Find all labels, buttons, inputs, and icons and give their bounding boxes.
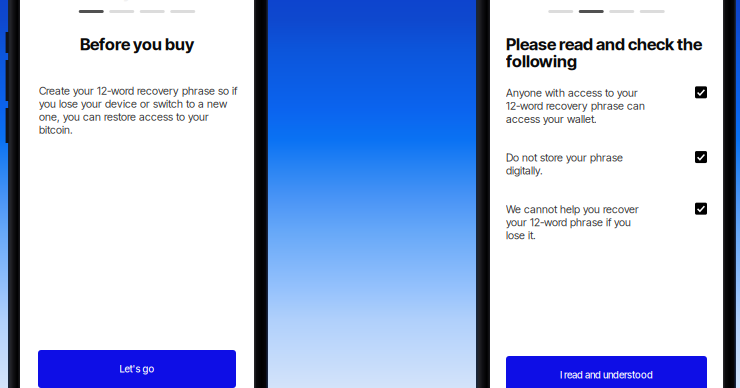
staticText: Do not store your phrase digitally. <box>506 151 623 177</box>
button[interactable]: Let's go <box>38 350 236 388</box>
staticText: Anyone with access to your 12-word recov… <box>506 86 645 125</box>
staticText: Create your 12-word recovery phrase so i… <box>39 84 237 136</box>
staticText: We cannot help you recover your 12-word … <box>506 203 639 242</box>
staticText: I read and understood <box>560 369 653 381</box>
button[interactable]: Anyone with access to your 12-word recov… <box>506 86 707 125</box>
staticText: Let's go <box>119 363 154 375</box>
button[interactable]: I read and understood <box>506 356 707 388</box>
staticText: Please read and check the following <box>506 34 702 71</box>
button[interactable]: Do not store your phrase digitally. <box>506 151 707 177</box>
staticText: Before you buy <box>80 34 194 54</box>
button[interactable]: We cannot help you recover your 12-word … <box>506 203 707 242</box>
